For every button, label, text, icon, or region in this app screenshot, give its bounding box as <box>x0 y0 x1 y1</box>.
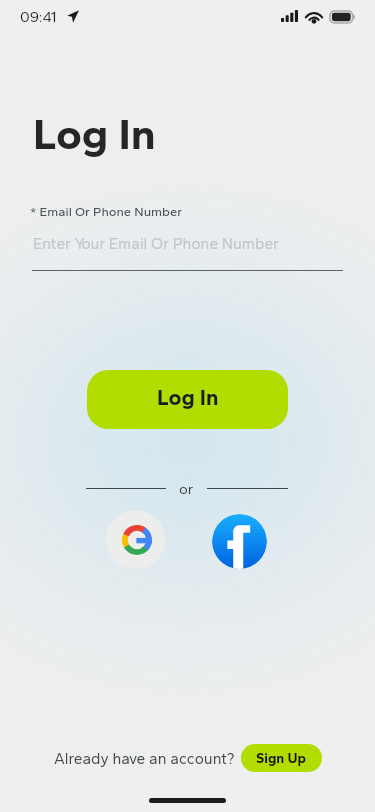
staticText: Log In <box>33 107 156 160</box>
button[interactable]: Sign in with Google <box>106 510 165 569</box>
staticText: Enter Your Email Or Phone Number <box>33 234 279 253</box>
staticText: or <box>179 480 194 498</box>
staticText: Log In <box>157 384 219 410</box>
staticText: Already have an account? <box>54 749 235 768</box>
button[interactable]: Log In <box>87 370 288 429</box>
staticText: 09:41 <box>20 8 57 26</box>
staticText: Sign Up <box>256 750 307 767</box>
button[interactable]: Enter Your Email Or Phone Number <box>32 234 343 271</box>
staticText: * Email Or Phone Number <box>30 204 183 220</box>
button[interactable]: Sign in with Facebook <box>212 514 267 569</box>
button[interactable]: Sign Up <box>241 744 322 772</box>
